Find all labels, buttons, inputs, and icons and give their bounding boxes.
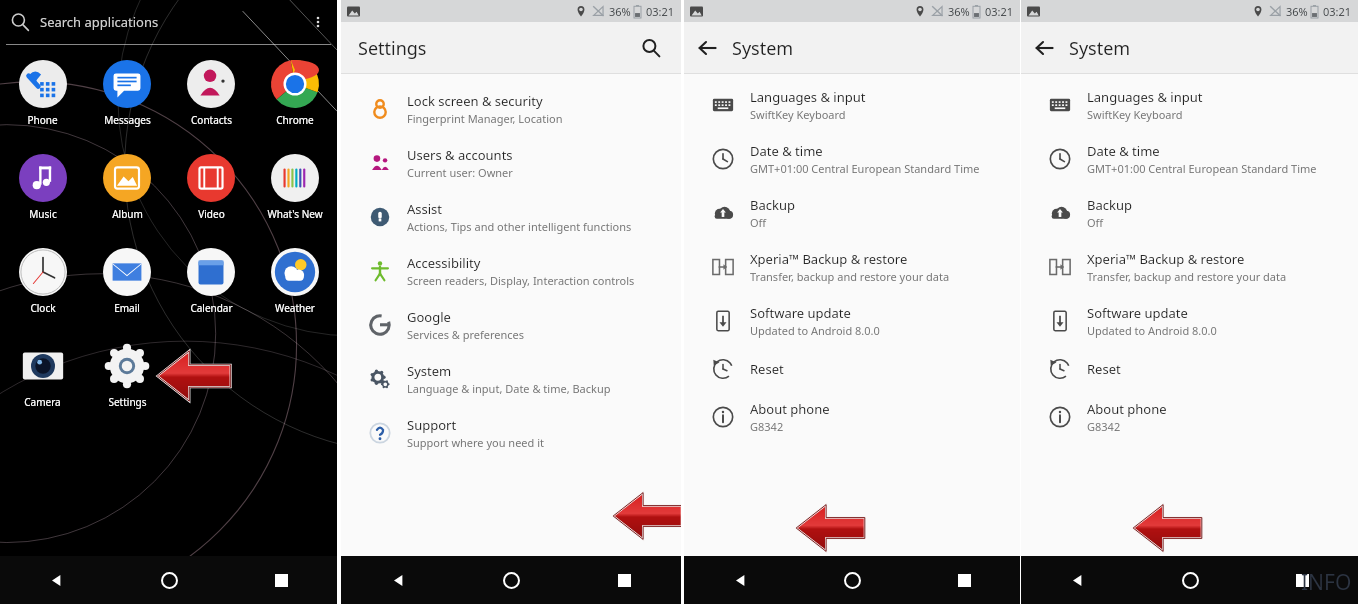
button[interactable]: Software update (684, 294, 1020, 348)
button[interactable]: Reset (684, 348, 1020, 390)
button[interactable]: Settings (85, 336, 169, 430)
button[interactable]: Camera (0, 336, 85, 430)
staticText: Backup (1087, 196, 1132, 214)
button[interactable]: Home (455, 556, 568, 604)
button[interactable]: Assist (341, 190, 681, 244)
staticText: Reset (750, 360, 784, 378)
staticText: Transfer, backup and restore your data (1087, 269, 1287, 284)
button[interactable]: Reset (1021, 348, 1358, 390)
button[interactable]: Backup (1021, 186, 1358, 240)
button[interactable]: Search (627, 24, 675, 72)
button[interactable]: Back (1021, 24, 1069, 72)
button[interactable]: Email (85, 242, 169, 336)
staticText: SwiftKey Keyboard (1087, 107, 1183, 122)
staticText: Language & input, Date & time, Backup (407, 381, 611, 396)
button[interactable]: Home (1134, 556, 1246, 604)
button[interactable]: Home (796, 556, 908, 604)
staticText: 36% (609, 4, 631, 19)
staticText: INFO (1301, 568, 1352, 597)
staticText: Updated to Android 8.0.0 (1087, 323, 1217, 338)
staticText: 36% (1286, 4, 1308, 19)
button[interactable]: System (341, 352, 681, 406)
button[interactable]: Recents (908, 556, 1020, 604)
button[interactable]: Messages (85, 54, 169, 148)
button[interactable]: Users & accounts (341, 136, 681, 190)
staticText: Date & time (1087, 142, 1160, 160)
button[interactable]: Weather (253, 242, 337, 336)
button[interactable]: Back (0, 556, 113, 604)
button[interactable]: Phone (0, 54, 85, 148)
button[interactable]: Accessibility (341, 244, 681, 298)
staticText: Phone (27, 113, 58, 127)
button[interactable]: Clock (0, 242, 85, 336)
button[interactable]: Date & time (1021, 132, 1358, 186)
staticText: Music (29, 207, 57, 221)
button[interactable]: Back (684, 24, 732, 72)
staticText: Users & accounts (407, 146, 513, 164)
staticText: G8342 (1087, 419, 1121, 434)
staticText: Camera (24, 395, 61, 409)
staticText: Contacts (191, 113, 232, 127)
staticText: Xperia™ Backup & restore (750, 250, 908, 268)
staticText: Backup (750, 196, 795, 214)
button (169, 336, 253, 430)
staticText: 03:21 (1323, 4, 1352, 19)
staticText: Assist (407, 200, 443, 218)
button[interactable]: Chrome (253, 54, 337, 148)
button[interactable]: Album (85, 148, 169, 242)
button[interactable]: Backup (684, 186, 1020, 240)
staticText: About phone (750, 400, 830, 418)
staticText: Weather (275, 301, 315, 315)
staticText: Languages & input (750, 88, 866, 106)
button[interactable]: Xperia™ Backup & restore (1021, 240, 1358, 294)
button[interactable]: About phone (1021, 390, 1358, 444)
staticText: 03:21 (646, 4, 675, 19)
button[interactable]: Recents (1246, 556, 1358, 604)
button[interactable]: Lock screen & security (341, 82, 681, 136)
button[interactable]: Music (0, 148, 85, 242)
button[interactable]: What's New (253, 148, 337, 242)
staticText: Xperia™ Backup & restore (1087, 250, 1245, 268)
staticText: Album (112, 207, 143, 221)
staticText: SwiftKey Keyboard (750, 107, 846, 122)
staticText: Calendar (190, 301, 233, 315)
staticText: Email (114, 301, 140, 315)
button[interactable]: Recents (568, 556, 681, 604)
staticText: G8342 (750, 419, 784, 434)
button[interactable]: Back (1021, 556, 1134, 604)
staticText: Support where you need it (407, 435, 544, 450)
staticText: Google (407, 308, 451, 326)
button[interactable]: Search applications (0, 0, 337, 44)
button[interactable]: Recents (225, 556, 337, 604)
staticText: Messages (104, 113, 151, 127)
button[interactable]: Back (684, 556, 796, 604)
button[interactable]: Home (113, 556, 225, 604)
staticText: Languages & input (1087, 88, 1203, 106)
button (253, 336, 337, 430)
staticText: System (407, 362, 452, 380)
button[interactable]: Date & time (684, 132, 1020, 186)
button[interactable]: Contacts (169, 54, 253, 148)
button[interactable]: About phone (684, 390, 1020, 444)
staticText: Clock (30, 301, 56, 315)
staticText: About phone (1087, 400, 1167, 418)
button[interactable]: Video (169, 148, 253, 242)
staticText: What's New (267, 207, 323, 221)
staticText: Date & time (750, 142, 823, 160)
staticText: Services & preferences (407, 327, 525, 342)
button[interactable]: Calendar (169, 242, 253, 336)
button[interactable]: Xperia™ Backup & restore (684, 240, 1020, 294)
staticText: Search applications (40, 13, 159, 31)
button[interactable]: Support (341, 406, 681, 460)
button[interactable]: Languages & input (1021, 78, 1358, 132)
button[interactable]: Google (341, 298, 681, 352)
staticText: Transfer, backup and restore your data (750, 269, 950, 284)
staticText: 36% (948, 4, 970, 19)
staticText: 03:21 (985, 4, 1014, 19)
staticText: GMT+01:00 Central European Standard Time (750, 161, 980, 176)
staticText: Software update (750, 304, 851, 322)
button[interactable]: Languages & input (684, 78, 1020, 132)
button[interactable]: Back (341, 556, 455, 604)
button[interactable]: Software update (1021, 294, 1358, 348)
staticText: Actions, Tips and other intelligent func… (407, 219, 632, 234)
